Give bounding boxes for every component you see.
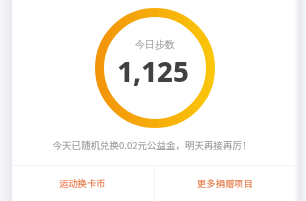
staticText: 运动换卡币 <box>59 176 106 189</box>
button[interactable]: 运动换卡币 <box>12 165 153 200</box>
staticText: 今天已随机兑换0.02元公益金，明天再接再厉！ <box>11 138 293 152</box>
staticText: 更多捐赠项目 <box>197 176 253 189</box>
staticText: 今日步数 <box>14 38 296 51</box>
button[interactable]: 更多捐赠项目 <box>155 165 306 200</box>
staticText: 1,125 <box>12 53 294 90</box>
